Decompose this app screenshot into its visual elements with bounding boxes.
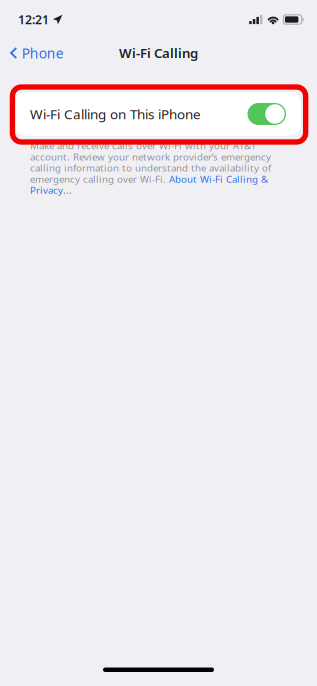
staticText: About Wi-Fi Calling & xyxy=(169,172,268,185)
staticText: Wi-Fi Calling xyxy=(119,44,198,62)
button[interactable]: About Wi-Fi Calling & xyxy=(169,172,268,185)
staticText: Phone xyxy=(22,44,64,62)
staticText: 12:21 xyxy=(18,11,49,28)
staticText: calling information to understand the av… xyxy=(30,161,271,174)
staticText: emergency calling over Wi-Fi. xyxy=(30,172,169,185)
staticText: account. Review your network provider’s … xyxy=(30,150,271,163)
button[interactable]: Phone xyxy=(0,39,72,67)
button[interactable]: Privacy... xyxy=(30,184,72,195)
staticText: Make and receive calls over Wi-Fi with y… xyxy=(30,139,256,152)
button[interactable]: Wi-Fi Calling on This iPhone xyxy=(15,92,301,136)
staticText: Wi-Fi Calling on This iPhone xyxy=(30,105,201,123)
staticText: Privacy... xyxy=(30,183,72,197)
